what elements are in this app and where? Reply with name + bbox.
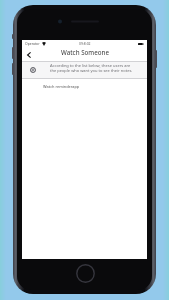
staticText: Watch reminderapp — [43, 84, 80, 89]
button[interactable]: Watch reminderapp — [22, 79, 147, 97]
staticText: 09:8:02 — [79, 41, 91, 46]
staticText: Operator — [25, 41, 40, 46]
staticText: Watch Someone — [61, 48, 109, 56]
button[interactable]: Back — [23, 49, 35, 61]
staticText: According to the list below, these users… — [50, 63, 136, 74]
